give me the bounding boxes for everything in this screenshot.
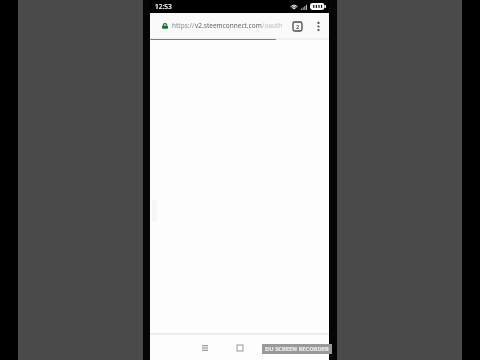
staticText: 2 — [296, 23, 300, 30]
staticText: /oauth — [262, 21, 283, 30]
staticText: v2.steemconnect.com — [195, 21, 262, 30]
button[interactable]: More options — [310, 15, 326, 37]
button[interactable]: Search or type web address — [154, 13, 290, 38]
staticText: https:// — [172, 21, 195, 30]
button[interactable]: Recents — [198, 341, 212, 355]
button[interactable]: Home — [233, 341, 247, 355]
button[interactable]: Tabs, 2 open — [285, 15, 310, 37]
staticText: DU SCREEN RECORDER — [265, 345, 329, 353]
staticText: 12:53 — [155, 2, 172, 11]
